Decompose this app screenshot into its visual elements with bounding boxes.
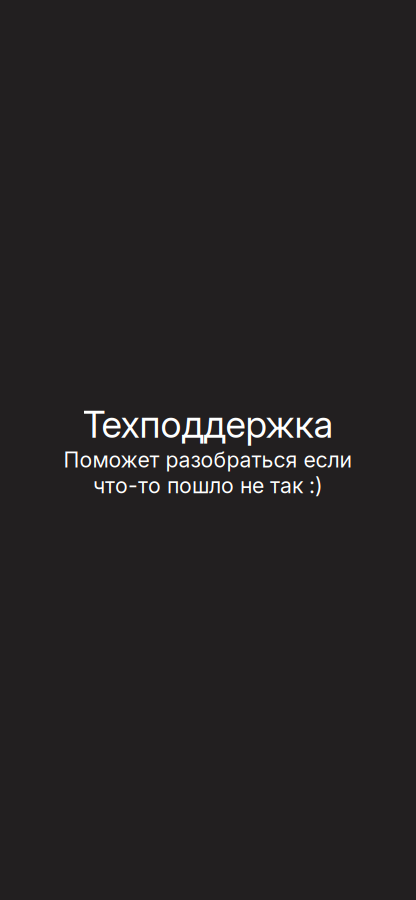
staticText: что-то пошло не так :) xyxy=(93,473,323,498)
staticText: Техподдержка xyxy=(82,402,333,447)
staticText: Поможет разобраться если xyxy=(63,447,352,473)
